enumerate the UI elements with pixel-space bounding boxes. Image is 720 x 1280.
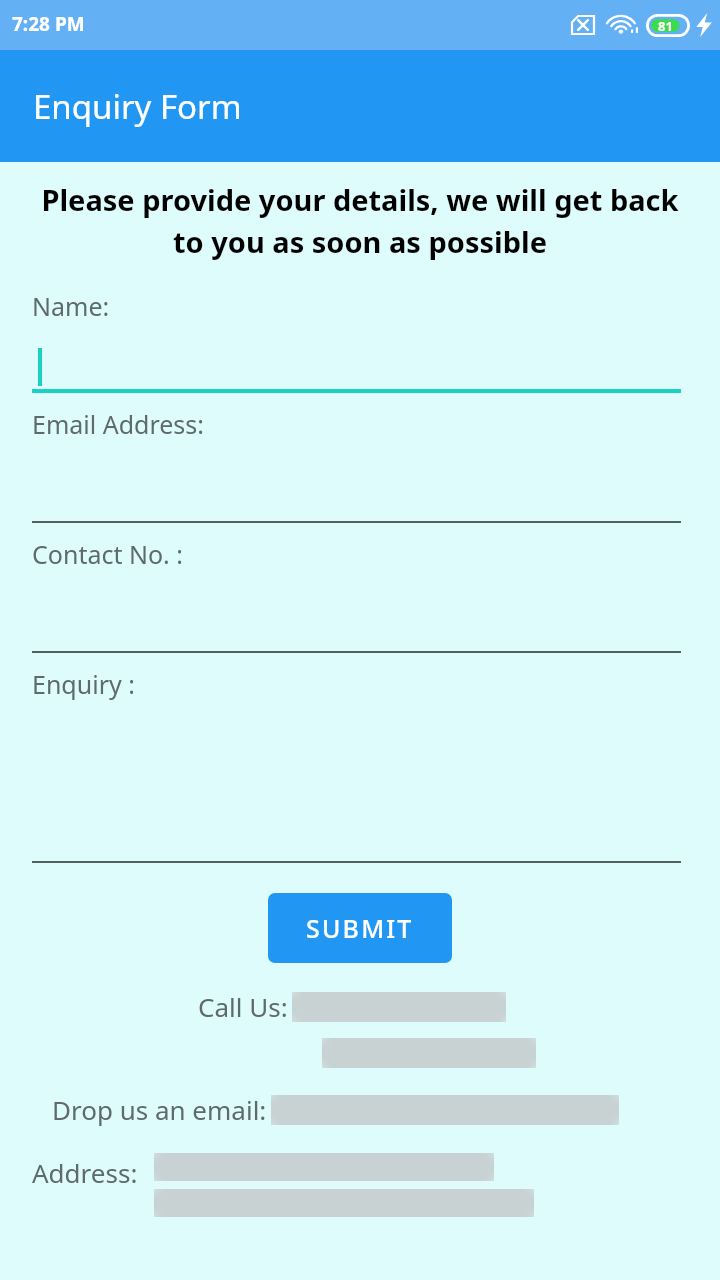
staticText: Call Us: xyxy=(198,989,288,1024)
staticText: 81 xyxy=(658,17,673,35)
staticText: Address: xyxy=(32,1155,138,1190)
button[interactable]: Call Us: xyxy=(0,989,720,1024)
button[interactable]: Name: xyxy=(32,289,681,393)
staticText: Enquiry Form xyxy=(33,84,242,129)
button[interactable]: Contact No. : xyxy=(32,537,681,653)
staticText: Enquiry : xyxy=(32,667,135,701)
button[interactable]: Enquiry : xyxy=(32,667,681,863)
staticText: Email Address: xyxy=(32,407,205,441)
staticText: Drop us an email: xyxy=(52,1092,267,1127)
button[interactable]: Drop us an email: xyxy=(0,1092,720,1127)
button[interactable]: Email Address: xyxy=(32,407,681,523)
staticText: Contact No. : xyxy=(32,537,183,571)
staticText: Please provide your details, we will get… xyxy=(32,180,688,261)
staticText: 7:28 PM xyxy=(12,11,85,37)
button[interactable]: SUBMIT xyxy=(268,893,452,963)
staticText: SUBMIT xyxy=(306,911,414,945)
staticText: Name: xyxy=(32,289,110,323)
